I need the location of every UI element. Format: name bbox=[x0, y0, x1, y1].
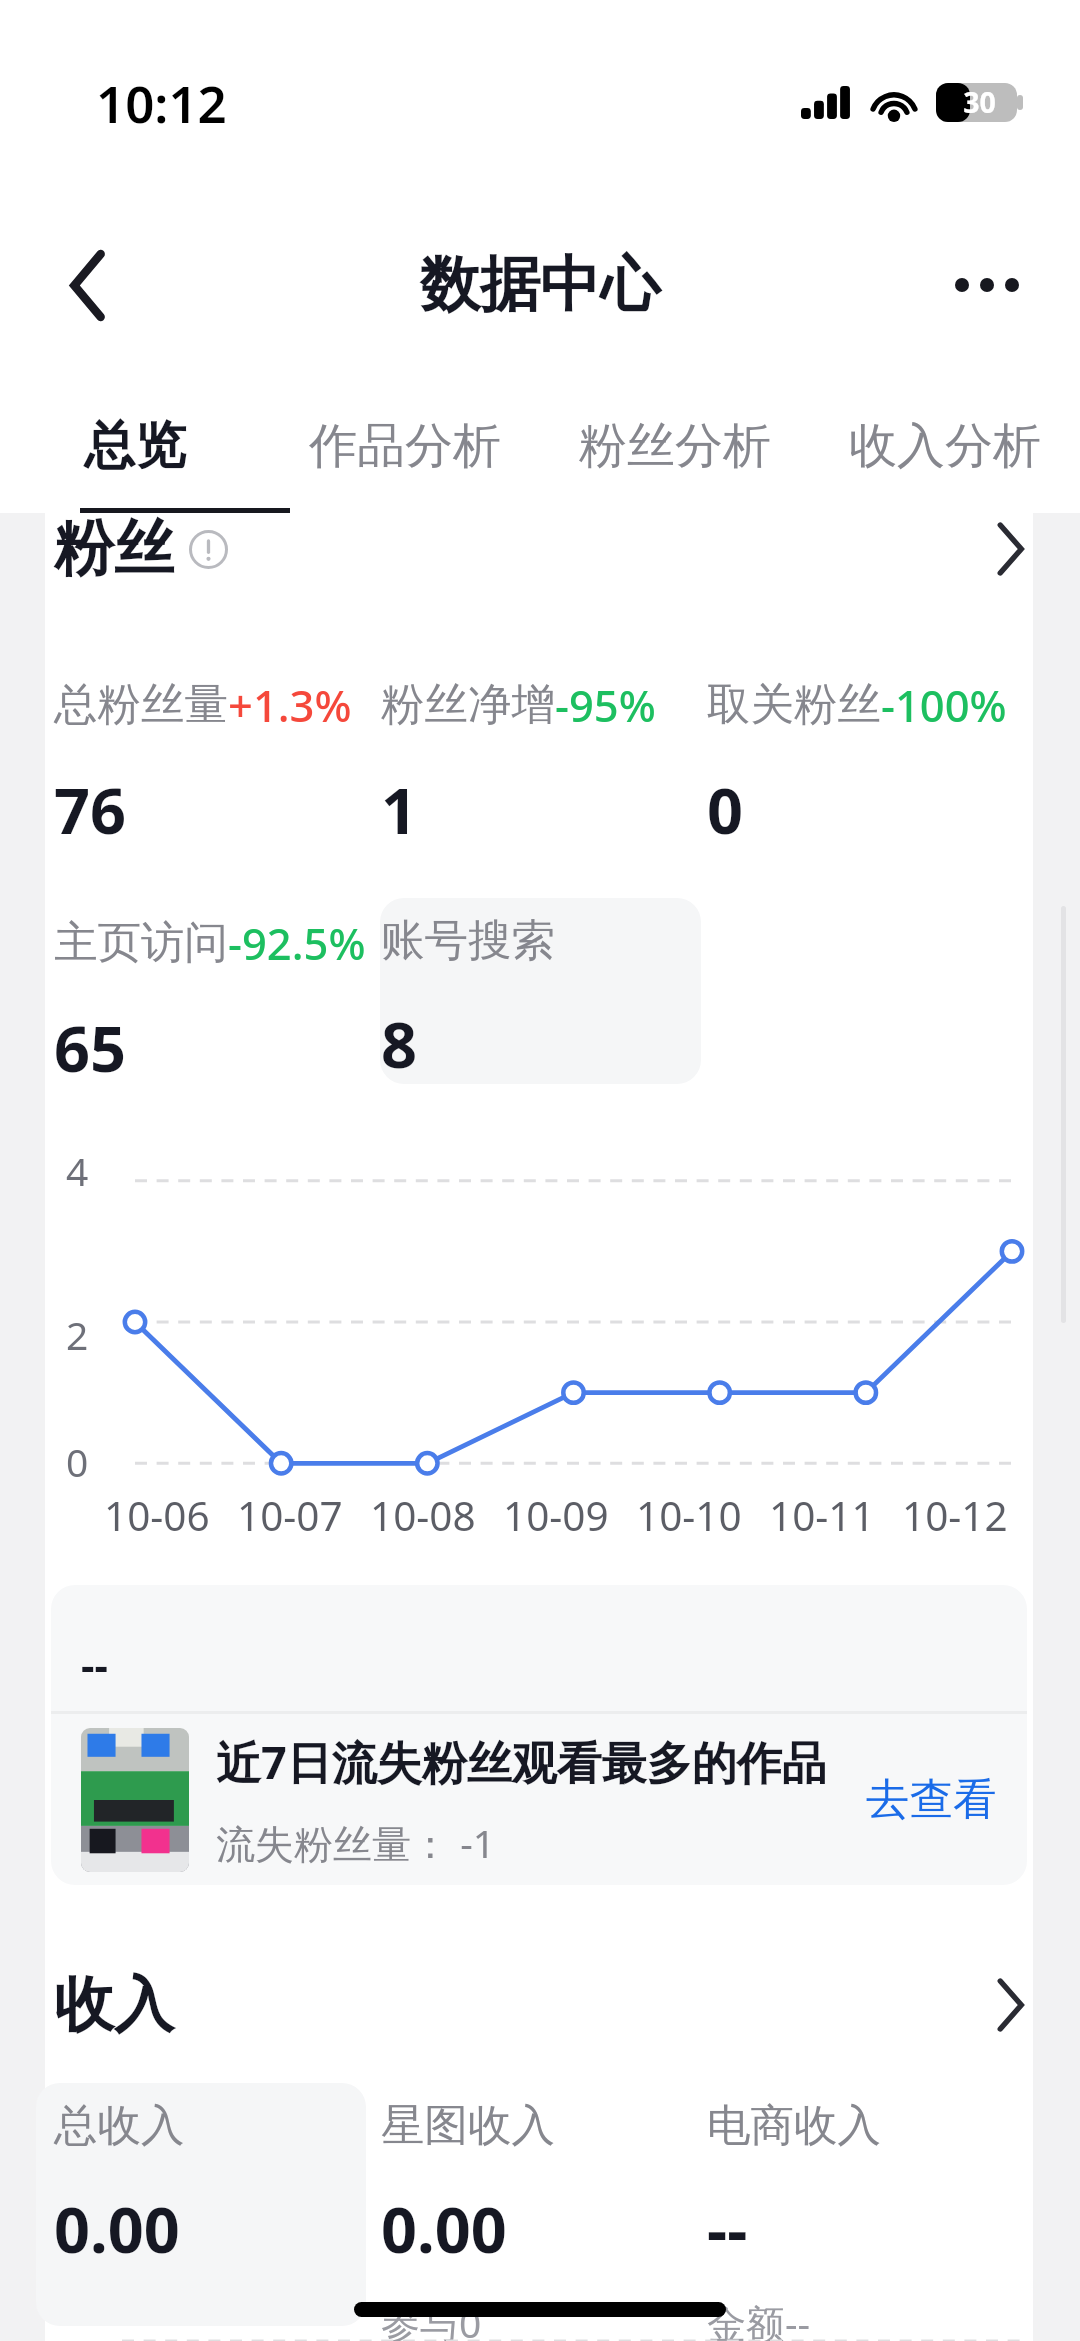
staticText: 参与0 bbox=[381, 2296, 482, 2341]
staticText: 30 bbox=[939, 83, 1020, 122]
staticText: 2 bbox=[66, 1308, 89, 1361]
button[interactable]: 总收入 bbox=[54, 2098, 381, 2272]
staticText: -95% bbox=[555, 675, 656, 734]
staticText: 星图收入 bbox=[381, 2098, 555, 2153]
staticText: 10-10 bbox=[636, 1488, 742, 1543]
button[interactable]: 总粉丝量 bbox=[54, 675, 381, 853]
staticText: 8 bbox=[381, 1001, 418, 1087]
staticText: 粉丝净增 bbox=[381, 677, 555, 732]
staticText: 主页访问 bbox=[54, 915, 228, 970]
button[interactable]: 粉丝净增 bbox=[381, 675, 707, 853]
button[interactable]: Back bbox=[15, 213, 159, 357]
staticText: 总粉丝量 bbox=[54, 677, 228, 732]
staticText: 10-11 bbox=[769, 1488, 875, 1543]
staticText: 作品分析 bbox=[309, 416, 501, 476]
staticText: 0 bbox=[707, 767, 744, 853]
button[interactable]: 去查看 bbox=[866, 1772, 997, 1827]
button[interactable]: 粉丝分析 bbox=[540, 384, 810, 513]
button[interactable]: 取关粉丝 bbox=[707, 675, 1033, 853]
staticText: 10-08 bbox=[370, 1488, 476, 1543]
staticText: 流失粉丝量： -1 bbox=[216, 1816, 496, 1869]
staticText: 电商收入 bbox=[707, 2098, 881, 2153]
staticText: -100% bbox=[881, 675, 1007, 734]
staticText: 65 bbox=[54, 1005, 127, 1091]
button[interactable]: 主页访问 bbox=[54, 913, 381, 1091]
staticText: 4 bbox=[66, 1144, 89, 1197]
button[interactable]: 粉丝 bbox=[45, 513, 1033, 609]
staticText: 粉丝 bbox=[54, 511, 174, 587]
staticText: 0 bbox=[66, 1435, 89, 1488]
staticText: 10-09 bbox=[503, 1488, 609, 1543]
staticText: 10-07 bbox=[237, 1488, 343, 1543]
staticText: 10-06 bbox=[104, 1488, 210, 1543]
staticText: 1 bbox=[381, 767, 418, 853]
staticText: 收入 bbox=[54, 1967, 174, 2043]
button[interactable]: 电商收入 bbox=[707, 2098, 1033, 2341]
staticText: -- bbox=[707, 2186, 748, 2272]
staticText: 0.00 bbox=[54, 2186, 180, 2272]
staticText: 10-12 bbox=[902, 1488, 1008, 1543]
button[interactable]: 收入分析 bbox=[810, 384, 1080, 513]
staticText: 账号搜索 bbox=[381, 913, 555, 968]
staticText: 总收入 bbox=[54, 2098, 185, 2153]
staticText: 76 bbox=[54, 767, 127, 853]
staticText: 近7日流失粉丝观看最多的作品 bbox=[216, 1731, 827, 1792]
staticText: 金额-- bbox=[707, 2296, 811, 2341]
button[interactable]: 作品分析 bbox=[270, 384, 540, 513]
staticText: 粉丝分析 bbox=[579, 416, 771, 476]
staticText: -92.5% bbox=[228, 913, 366, 972]
button[interactable]: -- bbox=[51, 1585, 1027, 1885]
staticText: -- bbox=[81, 1636, 108, 1693]
staticText: 10:12 bbox=[96, 68, 227, 137]
staticText: +1.3% bbox=[228, 675, 352, 734]
button[interactable]: More options bbox=[915, 213, 1059, 357]
staticText: 取关粉丝 bbox=[707, 677, 881, 732]
button[interactable]: 账号搜索 bbox=[381, 913, 707, 1087]
staticText: 数据中心 bbox=[420, 247, 660, 323]
button[interactable]: 总览 bbox=[0, 384, 270, 513]
button[interactable]: 星图收入 bbox=[381, 2098, 707, 2341]
staticText: 0.00 bbox=[381, 2186, 507, 2272]
staticText: 收入分析 bbox=[849, 416, 1041, 476]
button[interactable]: 收入 bbox=[45, 1960, 1033, 2050]
staticText: 总览 bbox=[84, 414, 186, 478]
